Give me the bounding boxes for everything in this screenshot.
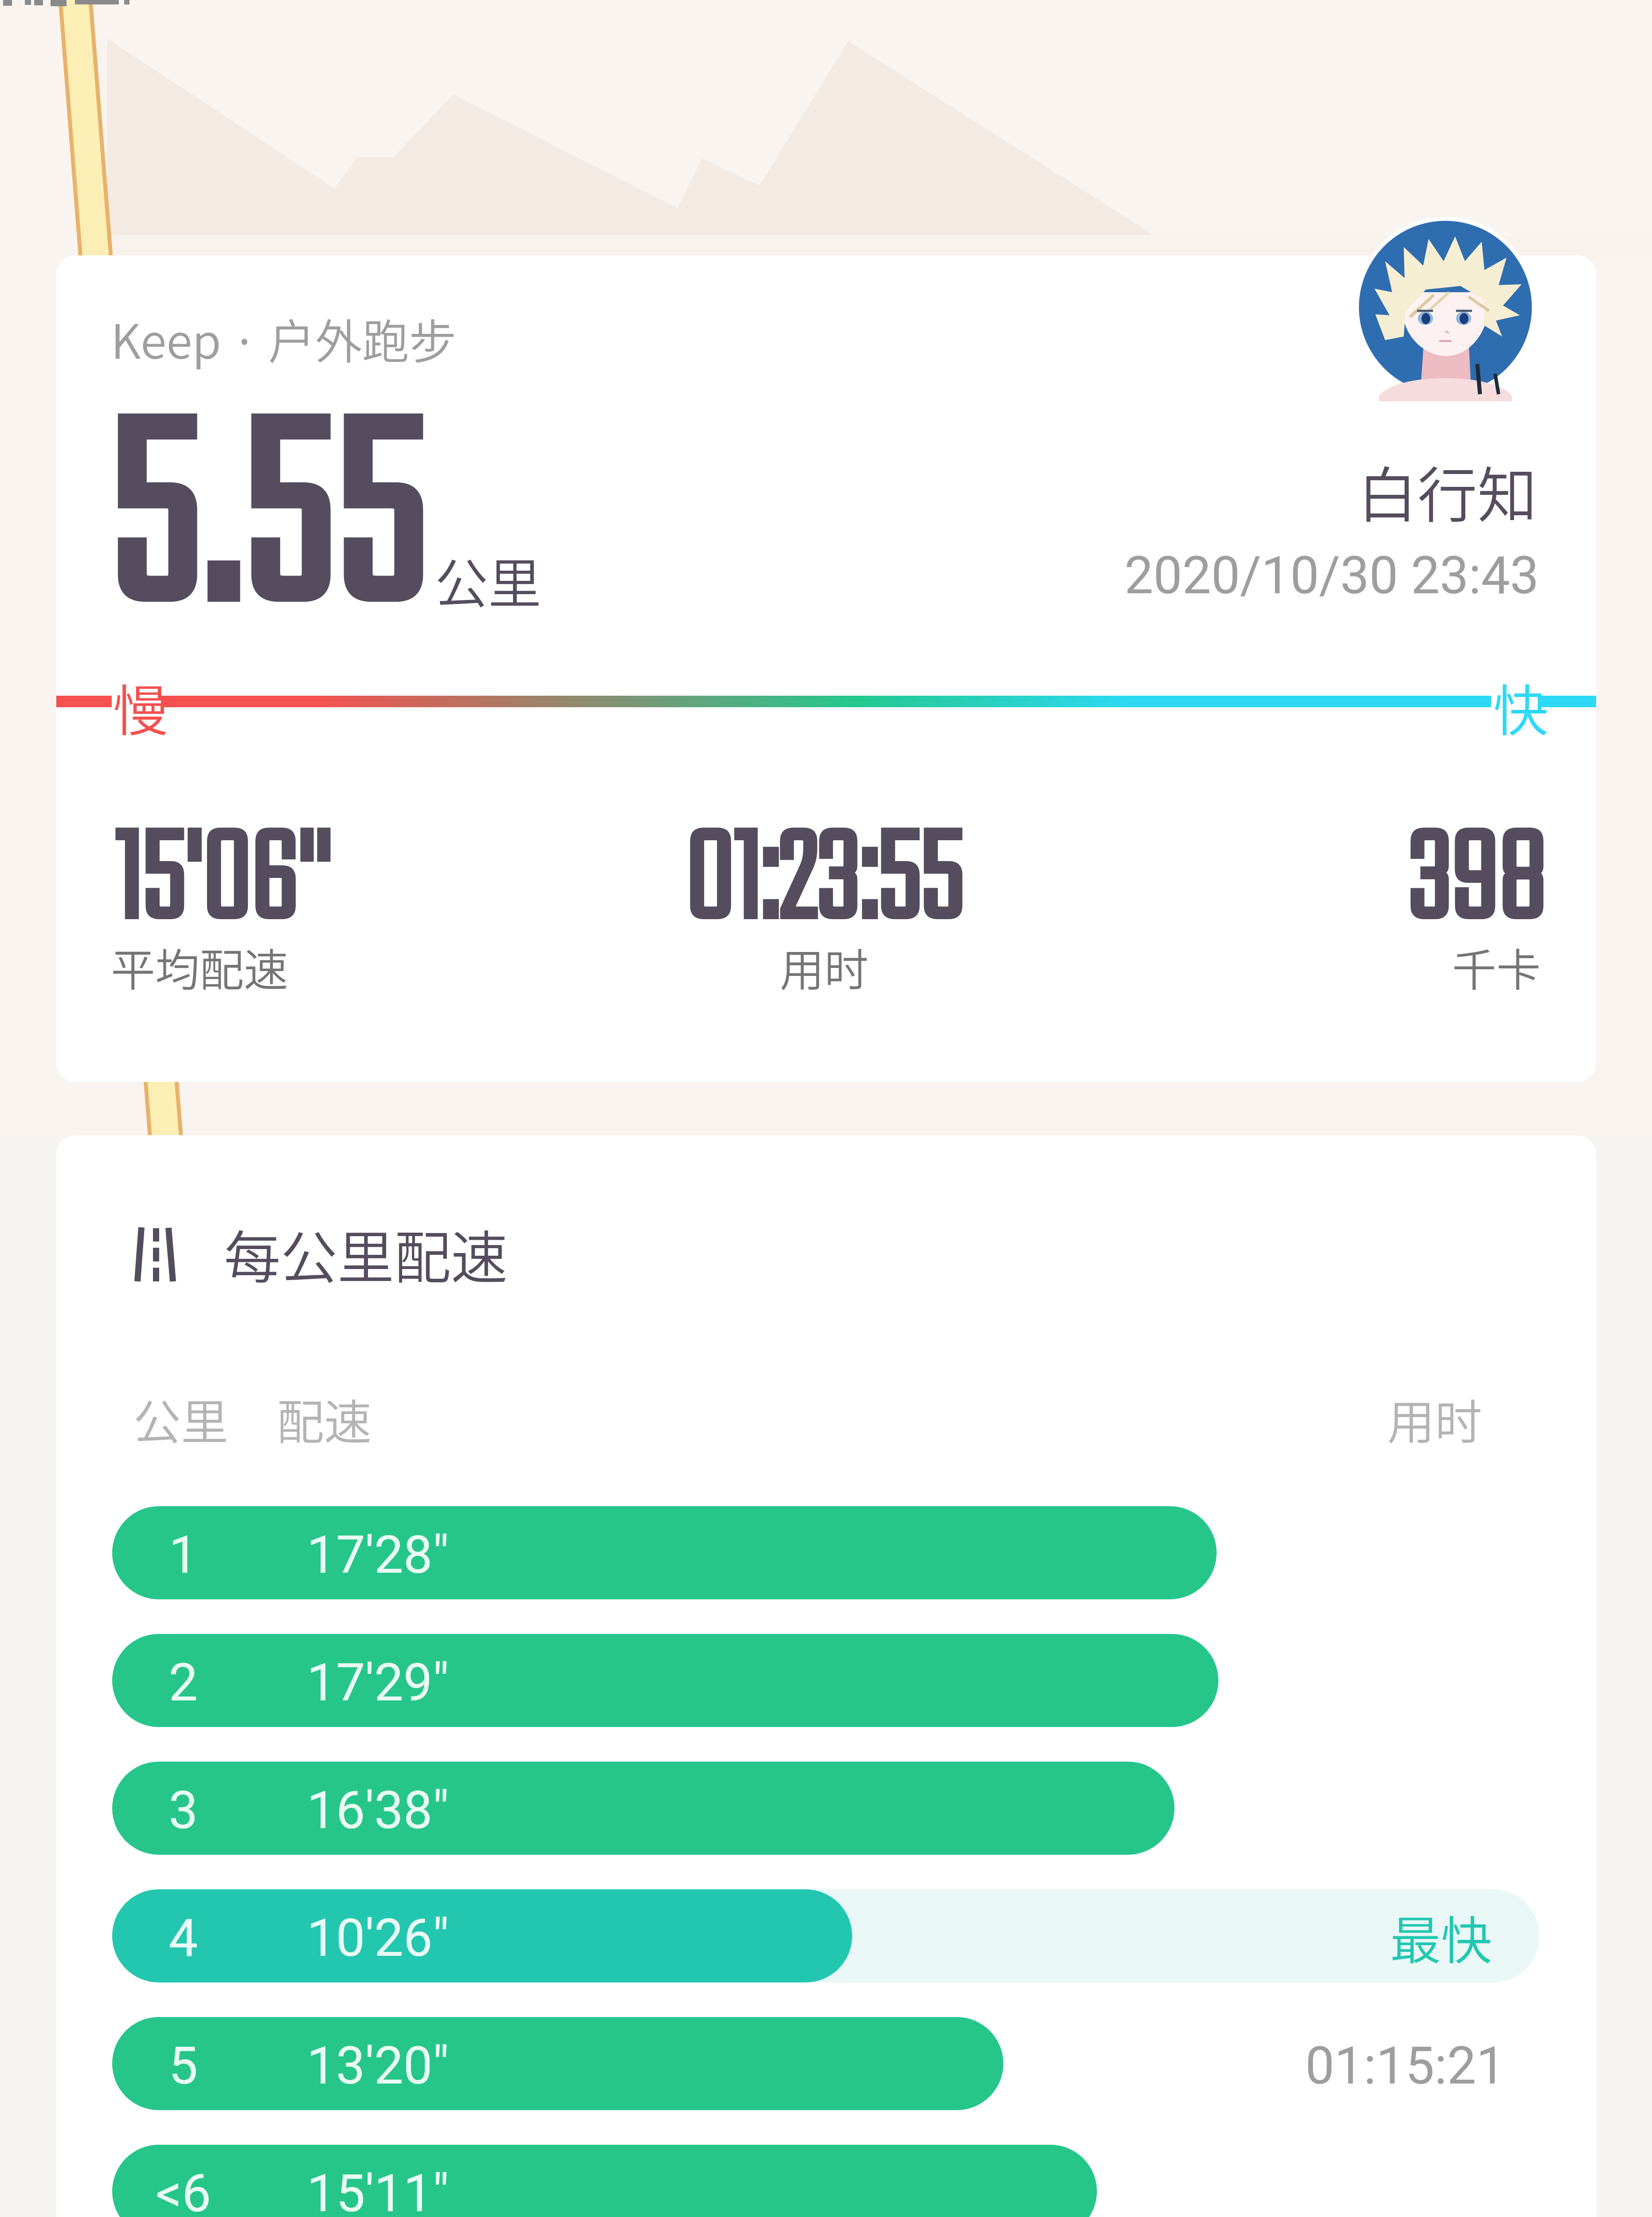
staticText: 15'06" (115, 783, 331, 983)
staticText: 5 (153, 2035, 213, 2096)
staticText: 17'29" (307, 1652, 449, 1713)
staticText: 2 (153, 1652, 213, 1713)
staticText: 平均配速 (111, 935, 288, 999)
staticText: <6 (153, 2163, 213, 2217)
staticText: 16'38" (307, 1780, 449, 1841)
staticText: 最快 (1390, 1900, 1492, 1974)
staticText: 13'20" (307, 2035, 449, 2096)
staticText: 4 (153, 1908, 213, 1968)
button[interactable]: Keep · 户外跑步 (56, 255, 1596, 1082)
staticText: 公里 (133, 1384, 229, 1453)
staticText: 5.55 (111, 321, 430, 734)
staticText: 01:15:21 (1305, 2035, 1506, 2096)
button[interactable]: User avatar (1355, 217, 1536, 398)
staticText: 千卡 (1120, 935, 1541, 999)
staticText: 白行知 (766, 447, 1537, 534)
staticText: 用时 (1387, 1384, 1483, 1453)
staticText: 慢 (113, 667, 168, 747)
staticText: Keep · 户外跑步 (111, 304, 456, 372)
staticText: 398 (1120, 783, 1546, 983)
staticText: 2020/10/30 23:43 (766, 545, 1539, 606)
staticText: 15'11" (307, 2163, 449, 2217)
staticText: 1 (153, 1524, 213, 1585)
staticText: 配速 (277, 1384, 372, 1453)
staticText: 快 (1493, 667, 1549, 747)
staticText: 10'26" (307, 1908, 449, 1968)
staticText: 公里 (435, 541, 541, 619)
staticText: 用时 (588, 935, 1060, 999)
staticText: 01:23:55 (588, 783, 1060, 983)
staticText: 每公里配速 (224, 1213, 508, 1295)
staticText: 17'28" (307, 1524, 449, 1585)
button[interactable]: 每公里配速 (56, 1136, 1596, 2217)
staticText: 3 (153, 1780, 213, 1841)
